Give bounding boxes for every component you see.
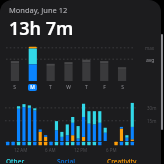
- button[interactable]: 30m: [0, 95, 161, 141]
- staticText: T: [49, 84, 52, 91]
- staticText: Other: [6, 157, 25, 163]
- button[interactable]: Other: [6, 156, 57, 164]
- staticText: Social: [57, 157, 75, 163]
- staticText: 6 PM: [106, 147, 117, 153]
- button[interactable]: [0, 141, 161, 146]
- staticText: Creativity: [107, 157, 137, 163]
- staticText: 30m: [147, 105, 157, 111]
- staticText: 12 PM: [74, 147, 88, 153]
- button[interactable]: max: [0, 44, 161, 82]
- staticText: S: [121, 84, 124, 91]
- staticText: max: [145, 45, 155, 51]
- staticText: 13h 7m: [9, 16, 74, 41]
- staticText: Monday, June 12: [9, 5, 68, 15]
- staticText: 12 AM: [14, 147, 28, 153]
- staticText: 15m: [147, 118, 157, 124]
- staticText: avg: [146, 57, 155, 64]
- button[interactable]: Monday, June 12: [0, 5, 161, 41]
- staticText: T: [85, 84, 88, 91]
- staticText: M: [30, 84, 35, 91]
- button[interactable]: Social: [57, 156, 107, 164]
- staticText: W: [66, 84, 71, 91]
- staticText: 6 AM: [45, 147, 56, 153]
- staticText: F: [103, 84, 106, 91]
- button[interactable]: Creativity: [107, 156, 157, 164]
- staticText: S: [13, 84, 16, 91]
